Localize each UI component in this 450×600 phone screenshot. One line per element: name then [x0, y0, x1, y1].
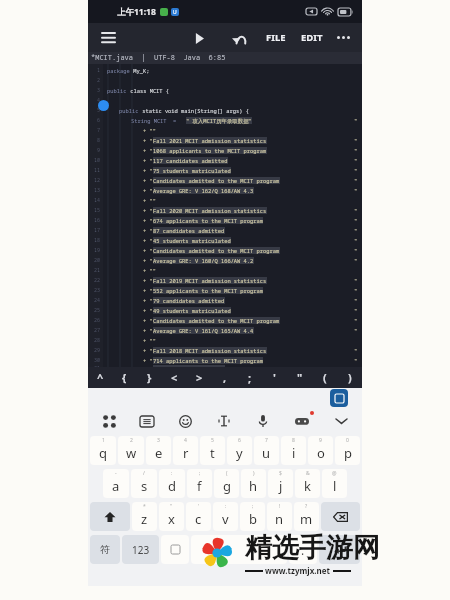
staticText: 5	[97, 107, 101, 114]
staticText: 1068 applicants to the MCIT program	[153, 147, 267, 154]
staticText: 0	[346, 437, 349, 444]
staticText: "	[354, 327, 358, 334]
staticText: .	[301, 542, 305, 558]
staticText: :	[225, 503, 227, 510]
button[interactable]: ;	[237, 367, 262, 388]
button[interactable]: /	[131, 469, 157, 498]
button[interactable]: 5	[200, 436, 225, 465]
button[interactable]: :	[213, 502, 238, 531]
button[interactable]: 4	[173, 436, 198, 465]
button[interactable]: Run	[187, 26, 211, 50]
staticText: 14	[94, 197, 101, 204]
button[interactable]: Shift	[90, 502, 130, 531]
button[interactable]: (	[214, 469, 239, 498]
staticText: ,	[223, 370, 227, 385]
staticText: 10	[94, 157, 101, 164]
staticText: t	[210, 444, 215, 462]
staticText: c	[195, 510, 202, 528]
button[interactable]: 7	[254, 436, 279, 465]
button[interactable]: 8	[281, 436, 306, 465]
button[interactable]: Symbols	[161, 535, 189, 564]
button[interactable]: -	[103, 469, 129, 498]
staticText: 123	[132, 543, 150, 557]
staticText: 6	[238, 437, 241, 444]
staticText: 29	[94, 347, 101, 354]
button[interactable]: 9	[308, 436, 333, 465]
button[interactable]: Clipboard	[330, 389, 348, 407]
button[interactable]: Menu	[96, 25, 121, 50]
button[interactable]: (	[312, 367, 337, 388]
staticText: "	[297, 370, 303, 385]
button[interactable]: >	[187, 367, 212, 388]
staticText: + "	[143, 297, 153, 304]
button[interactable]: ,	[212, 367, 237, 388]
button[interactable]: 0	[335, 436, 360, 465]
button[interactable]: 符	[90, 535, 120, 564]
button[interactable]: 3	[146, 436, 171, 465]
button[interactable]: EDIT	[298, 26, 326, 49]
button[interactable]: Backspace	[321, 502, 360, 531]
button[interactable]: Hide keyboard	[330, 410, 352, 432]
staticText: (	[323, 370, 327, 385]
staticText: 2	[97, 77, 101, 84]
button[interactable]: Voice input	[252, 410, 274, 432]
button[interactable]: Undo	[227, 26, 251, 50]
button[interactable]: '	[186, 502, 211, 531]
button[interactable]: ^	[88, 367, 112, 388]
staticText: "	[354, 317, 358, 324]
staticText: ;	[252, 503, 254, 510]
button[interactable]: @	[322, 469, 347, 498]
button[interactable]: 123	[122, 535, 159, 564]
staticText: " 攻入MCIT历年录取数据"	[186, 117, 252, 124]
button[interactable]: Apps	[98, 410, 120, 432]
staticText: r	[183, 444, 189, 462]
staticText: + "	[143, 257, 153, 264]
button[interactable]: "	[287, 367, 312, 388]
button[interactable]: !	[267, 502, 292, 531]
staticText: "	[354, 347, 358, 354]
button[interactable]: &	[295, 469, 320, 498]
button[interactable]: :	[159, 469, 185, 498]
staticText: + "	[143, 147, 153, 154]
button[interactable]: )	[241, 469, 266, 498]
button[interactable]: Text editing	[213, 410, 235, 432]
button[interactable]: More options	[333, 27, 354, 48]
button[interactable]: }	[137, 367, 162, 388]
staticText: "	[354, 297, 358, 304]
button[interactable]: .	[289, 535, 317, 564]
button[interactable]: "	[159, 502, 184, 531]
button[interactable]: '	[262, 367, 287, 388]
button[interactable]: Games	[291, 410, 313, 432]
button[interactable]: ?	[294, 502, 319, 531]
button[interactable]: *	[132, 502, 157, 531]
button[interactable]: 6	[227, 436, 252, 465]
button[interactable]: {	[112, 367, 137, 388]
button[interactable]: FILE	[263, 26, 289, 49]
button[interactable]: $	[268, 469, 293, 498]
staticText: ^	[97, 370, 104, 385]
staticText: "	[354, 217, 358, 224]
button[interactable]: <	[162, 367, 187, 388]
staticText: 符	[100, 543, 110, 556]
staticText: + "	[143, 317, 153, 324]
button[interactable]: 1	[90, 436, 116, 465]
button[interactable]: Enter	[319, 535, 360, 564]
staticText: "	[354, 187, 358, 194]
button[interactable]: ;	[187, 469, 212, 498]
staticText: "	[354, 157, 358, 164]
staticText: + "	[143, 137, 153, 144]
staticText: u	[262, 444, 271, 462]
staticText: }	[147, 370, 152, 385]
button[interactable]: Keyboard layout	[136, 410, 158, 432]
staticText: Fall 2018 MCIT admission statistics	[153, 347, 267, 354]
button[interactable]: Space	[191, 535, 287, 564]
button[interactable]: )	[337, 367, 362, 388]
button[interactable]: 2	[118, 436, 144, 465]
staticText: EDIT	[301, 31, 323, 44]
staticText: 19	[94, 247, 101, 254]
staticText: '	[198, 503, 200, 510]
staticText: 24	[94, 297, 101, 304]
button[interactable]: ;	[240, 502, 265, 531]
staticText: + "	[143, 217, 153, 224]
button[interactable]: Emoji	[174, 410, 196, 432]
